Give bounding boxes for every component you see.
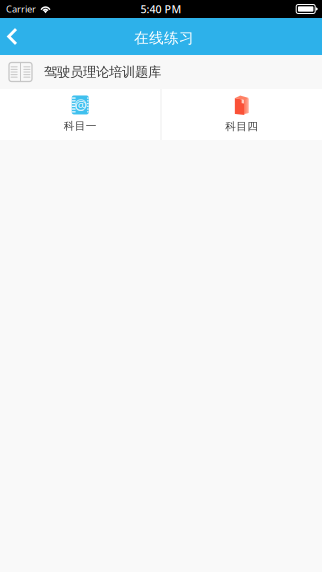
- staticText: 5:40 PM: [140, 2, 181, 16]
- staticText: 科目一: [64, 119, 97, 132]
- staticText: Carrier: [6, 3, 36, 15]
- button[interactable]: 科目四: [161, 89, 322, 140]
- button[interactable]: Back: [0, 18, 34, 55]
- staticText: @: [75, 96, 87, 114]
- button[interactable]: @: [0, 89, 160, 140]
- staticText: 驾驶员理论培训题库: [44, 64, 161, 80]
- staticText: 在线练习: [134, 29, 194, 47]
- staticText: 科目四: [225, 120, 258, 133]
